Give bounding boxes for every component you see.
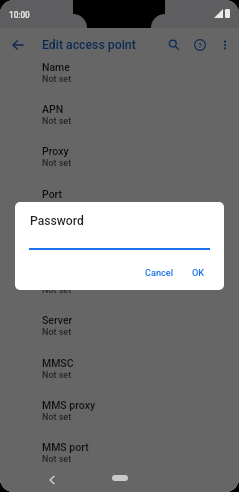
staticText: Not set — [42, 116, 72, 127]
staticText: MMS protocol — [42, 483, 109, 492]
button[interactable]: Password — [0, 272, 239, 314]
button[interactable]: Username — [0, 230, 239, 272]
button[interactable]: MMS port — [0, 441, 239, 483]
staticText: Not set — [42, 454, 72, 465]
button[interactable]: MMS proxy — [0, 399, 239, 441]
staticText: Proxy — [42, 145, 69, 157]
button[interactable]: More options — [213, 33, 237, 57]
button[interactable]: Help — [188, 33, 212, 57]
button[interactable]: Name — [0, 61, 239, 103]
button[interactable]: MMS protocol — [0, 483, 239, 492]
staticText: Password — [30, 214, 84, 228]
staticText: Not set — [42, 243, 72, 254]
button[interactable]: Back — [42, 470, 62, 490]
staticText: Not set — [42, 412, 72, 423]
button[interactable]: OK — [186, 263, 211, 282]
staticText: 10:00 — [9, 10, 30, 20]
button[interactable]: Search — [162, 33, 186, 57]
staticText: Server — [42, 314, 73, 326]
button[interactable]: Navigate up — [6, 33, 29, 56]
staticText: Not set — [42, 158, 72, 169]
button[interactable]: Home — [112, 475, 128, 481]
staticText: Not set — [42, 327, 72, 338]
staticText: APN — [42, 103, 64, 115]
staticText: Not set — [42, 201, 72, 212]
button[interactable]: Server — [0, 314, 239, 356]
staticText: Port — [42, 188, 63, 200]
staticText: Not set — [42, 74, 72, 85]
staticText: Name — [42, 61, 70, 73]
staticText: Edit access point — [42, 38, 136, 52]
staticText: ? — [198, 41, 202, 50]
staticText: OK — [192, 267, 205, 278]
button[interactable]: Port — [0, 188, 239, 230]
button[interactable]: MMSC — [0, 357, 239, 399]
button[interactable]: Proxy — [0, 145, 239, 187]
staticText: Not set — [42, 370, 72, 381]
button[interactable]: Cancel — [139, 263, 180, 282]
staticText: MMSC — [42, 357, 74, 369]
button[interactable]: APN — [0, 103, 239, 145]
staticText: Not set — [42, 285, 72, 296]
staticText: MMS port — [42, 441, 89, 453]
staticText: Cancel — [145, 267, 174, 278]
staticText: MMS proxy — [42, 399, 96, 411]
